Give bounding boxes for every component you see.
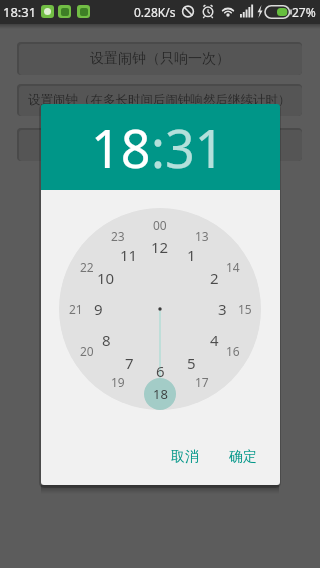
button[interactable]: 18 [144, 378, 176, 410]
staticText: 27% [292, 4, 316, 20]
staticText: 16 [226, 343, 240, 359]
staticText: 10 [97, 268, 115, 288]
staticText: 7 [125, 353, 134, 373]
staticText: 19 [111, 374, 125, 390]
staticText: 9 [94, 299, 103, 319]
staticText: 18 [153, 385, 168, 403]
staticText: 21 [69, 301, 83, 317]
staticText: 22 [80, 259, 94, 275]
staticText: 13 [195, 228, 209, 244]
staticText: 设置闹钟（在多长时间后闹钟响然后继续计时） [28, 92, 291, 108]
staticText: : [151, 112, 165, 183]
staticText: 3 [218, 299, 227, 319]
staticText: 23 [111, 228, 125, 244]
staticText: 6 [156, 361, 165, 381]
staticText: 设置闹钟（只响一次） [90, 50, 230, 68]
staticText: 8 [102, 330, 111, 350]
staticText: 00 [153, 217, 167, 233]
button[interactable]: 设置闹钟（只响一次） [17, 42, 302, 75]
staticText: 5 [187, 353, 196, 373]
staticText: 15 [238, 301, 252, 317]
button[interactable]: 确定 [209, 439, 277, 475]
staticText: 18:31 [3, 3, 37, 21]
staticText: 12 [151, 237, 169, 257]
staticText: 4 [210, 330, 219, 350]
button[interactable]: 设置闹钟（在多长时间后闹钟响然后继续计时） [17, 84, 302, 116]
staticText: 18 [91, 112, 151, 183]
staticText: 14 [226, 259, 240, 275]
staticText: 0.28K/s [134, 4, 176, 20]
button[interactable] [17, 128, 302, 161]
staticText: 确定 [229, 448, 257, 466]
staticText: 2 [210, 268, 219, 288]
staticText: 20 [80, 343, 94, 359]
staticText: 1 [187, 245, 196, 265]
staticText: 17 [195, 374, 209, 390]
staticText: 31 [165, 112, 225, 183]
staticText: 取消 [171, 448, 199, 466]
staticText: 11 [120, 245, 138, 265]
button[interactable]: 取消 [151, 439, 219, 475]
